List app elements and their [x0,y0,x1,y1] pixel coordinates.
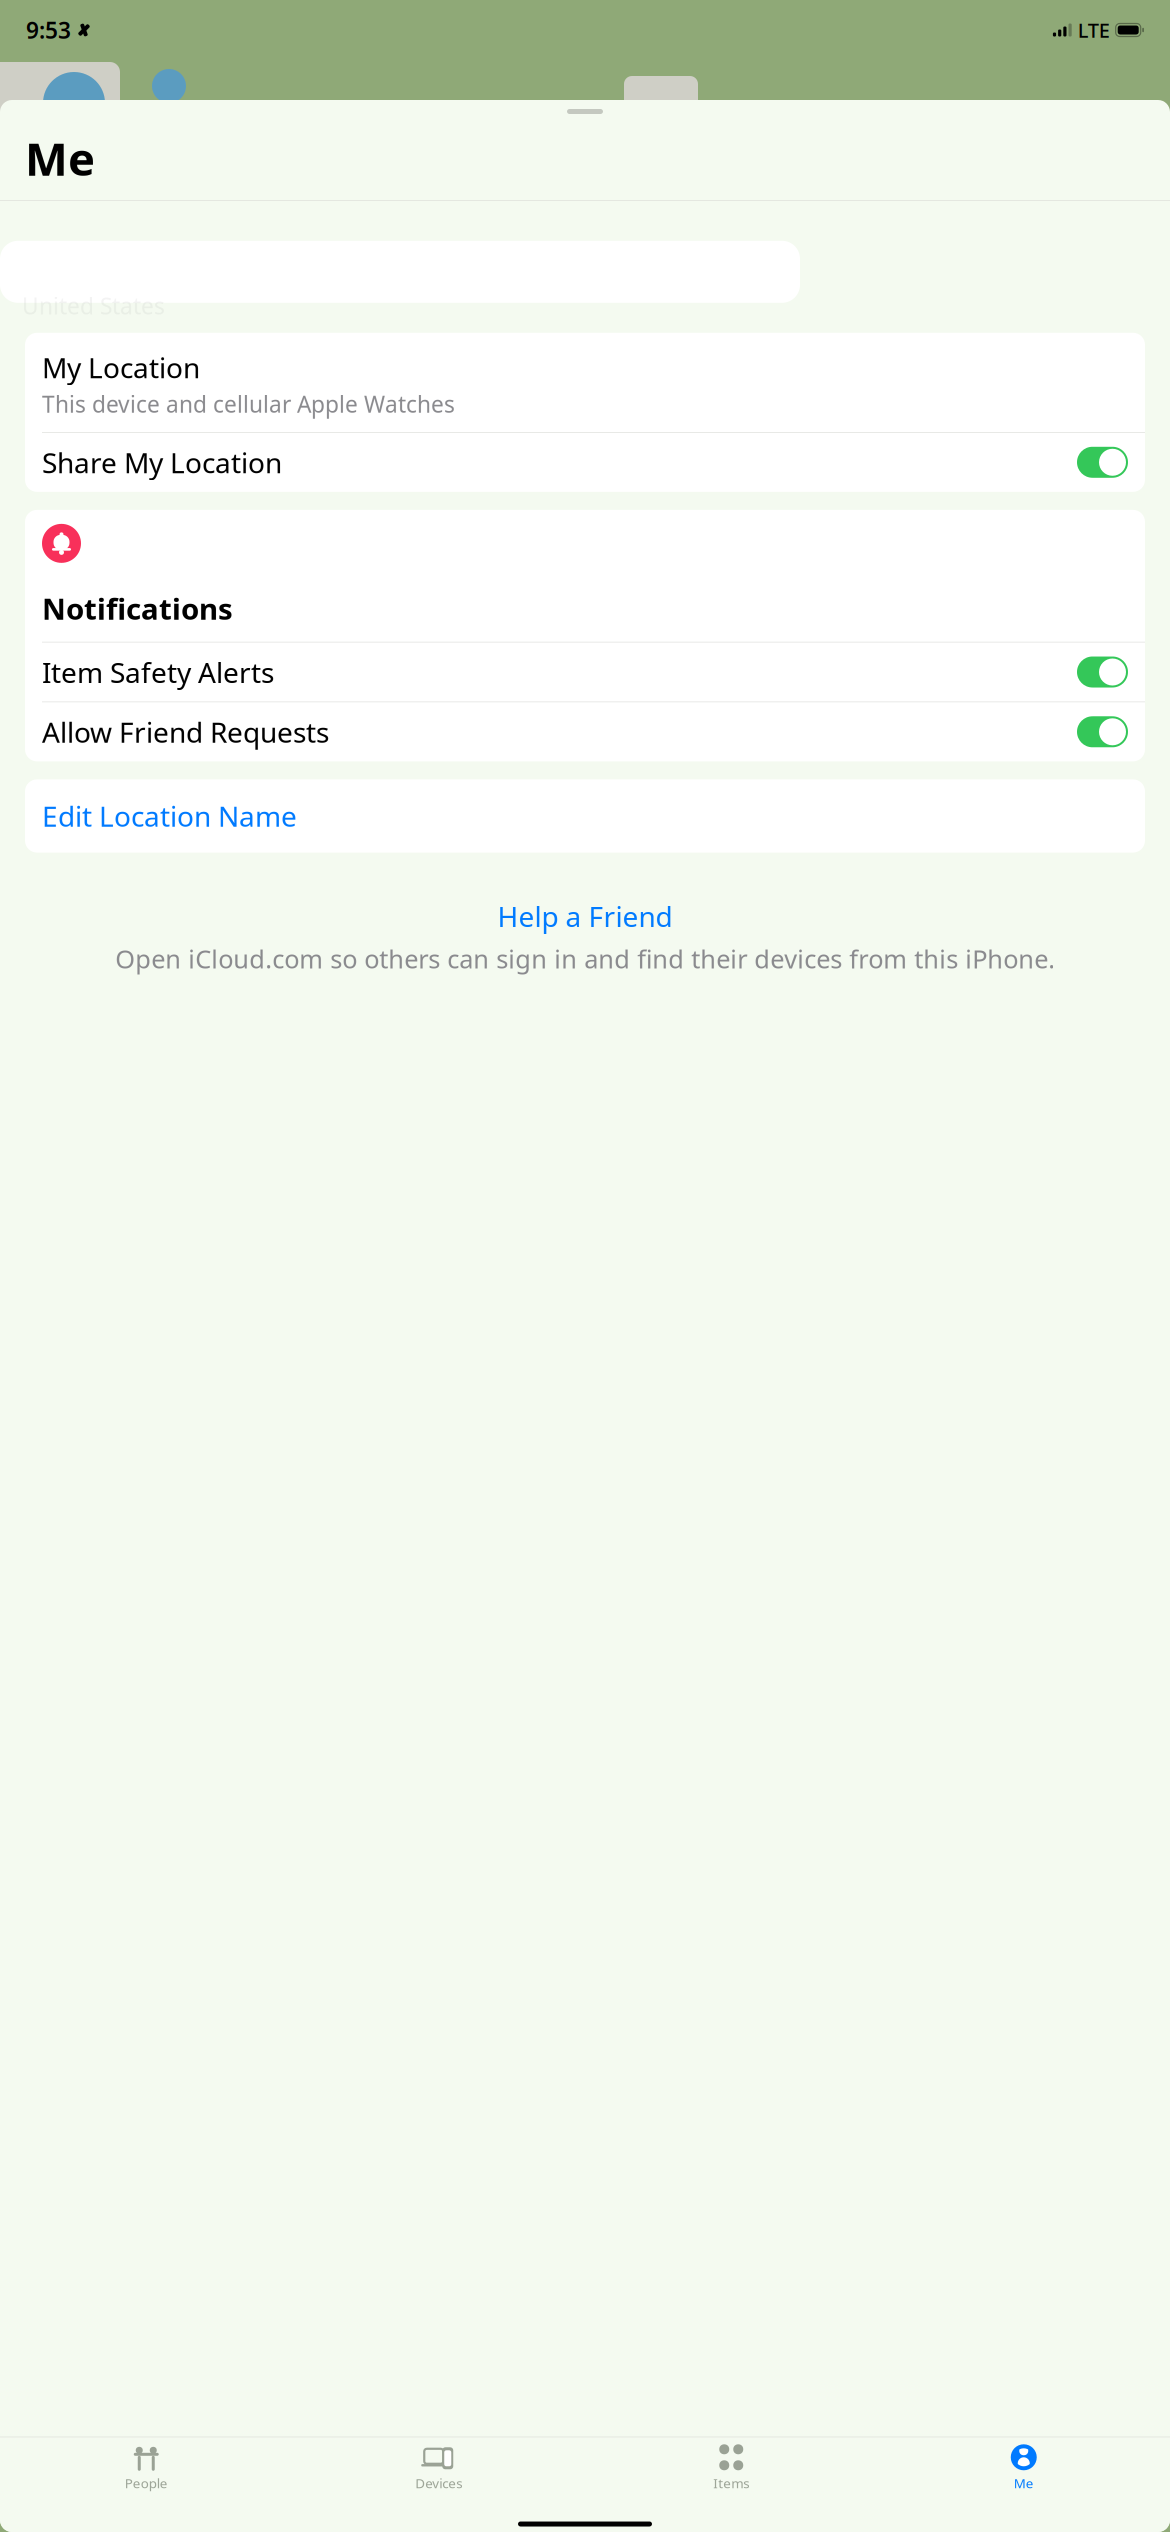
staticText: Me [1014,2474,1034,2492]
staticText: 9:53 [26,15,71,45]
button[interactable]: Items [585,2437,877,2494]
staticText: Notifications [42,589,233,628]
button[interactable]: My Location [25,333,1145,432]
staticText: Item Safety Alerts [42,653,274,691]
staticText: This device and cellular Apple Watches [42,389,455,419]
staticText: Me [25,128,95,188]
staticText: Open iCloud.com so others can sign in an… [115,942,1055,975]
staticText: People [125,2474,168,2492]
button[interactable]: Item Safety Alerts [25,642,1145,702]
staticText: LTE [1078,17,1110,43]
button[interactable]: Edit Location Name [25,779,1145,853]
button[interactable]: Help a Friend [497,895,672,938]
staticText: United States [22,291,165,321]
staticText: Help a Friend [497,898,672,935]
staticText: Items [713,2474,749,2492]
button[interactable]: Me [877,2437,1170,2494]
staticText: Devices [415,2474,462,2492]
staticText: Allow Friend Requests [42,713,329,750]
button[interactable]: Devices [292,2437,585,2494]
staticText: My Location [42,349,200,386]
button[interactable]: Allow Friend Requests [25,702,1145,761]
button[interactable]: Share My Location [25,433,1145,492]
staticText: Share My Location [42,444,282,481]
button[interactable]: People [0,2437,292,2494]
staticText: Edit Location Name [42,797,297,835]
